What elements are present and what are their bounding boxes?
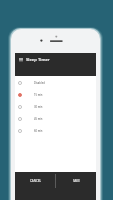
staticText: 15 min [34, 93, 43, 97]
staticText: 30 min [34, 105, 43, 109]
staticText: Sleep Timer [26, 57, 50, 63]
staticText: 45 min [34, 117, 43, 121]
staticText: 60 min [34, 129, 43, 133]
button[interactable]: Open navigation menu [19, 58, 23, 61]
staticText: Disabled [34, 81, 45, 85]
button[interactable]: CANCEL [15, 174, 55, 188]
staticText: SAVE [73, 179, 80, 183]
button[interactable]: 45 min [15, 113, 96, 125]
button[interactable]: 60 min [15, 125, 96, 137]
button[interactable]: 15 min [15, 89, 96, 101]
button[interactable]: Open navigation menu [15, 53, 96, 76]
button[interactable]: 30 min [15, 101, 96, 113]
staticText: CANCEL [30, 179, 41, 183]
button[interactable]: SAVE [56, 174, 96, 188]
button[interactable]: Disabled [15, 77, 96, 89]
